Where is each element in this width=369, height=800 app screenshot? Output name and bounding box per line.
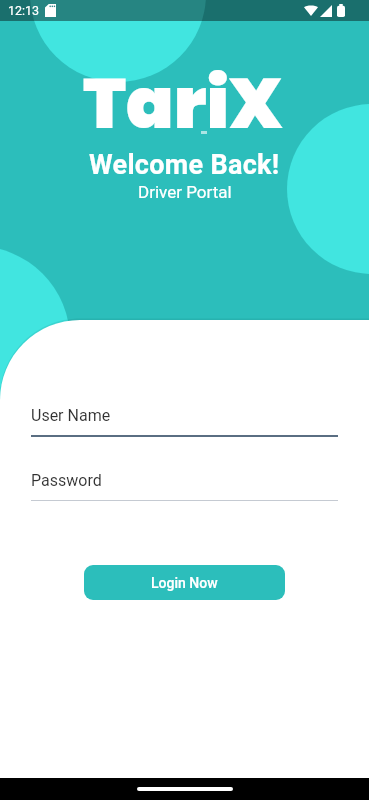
other: Battery [337,4,345,17]
staticText: Login Now [151,575,218,591]
staticText: Password [31,471,102,490]
button[interactable]: Password [31,471,338,501]
staticText: User Name [31,406,111,425]
other: Mobile signal [320,5,332,17]
staticText: Driver Portal [138,182,232,202]
staticText: TariX [83,54,283,152]
button[interactable]: User Name [31,406,338,437]
other: Wi-Fi [304,5,318,16]
staticText: 12:13 [8,3,40,18]
other: Home [137,787,233,791]
button[interactable]: Login Now [84,565,285,600]
other: SD card [45,4,56,17]
staticText: Welcome Back! [89,149,280,181]
